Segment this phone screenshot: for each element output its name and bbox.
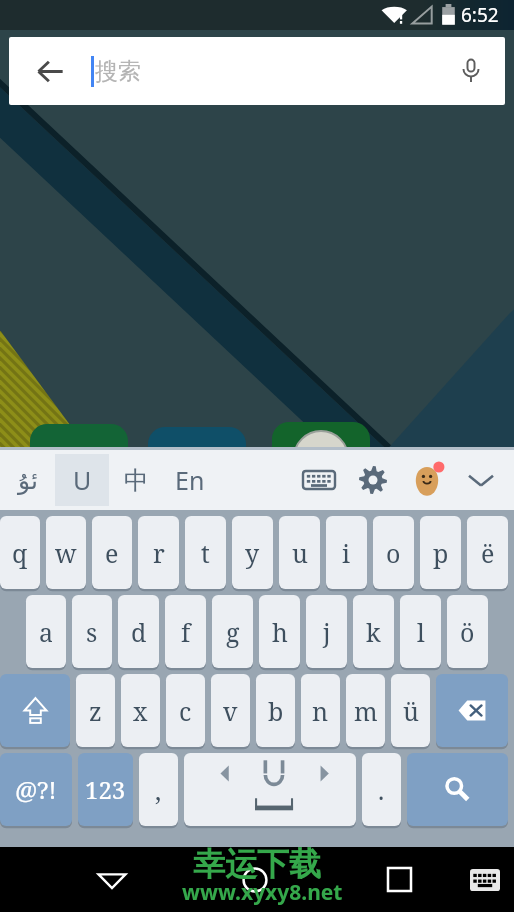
staticText: s xyxy=(86,615,98,649)
button[interactable]: Shift xyxy=(0,674,70,747)
button[interactable]: Backspace xyxy=(436,674,508,747)
staticText: u xyxy=(292,536,308,570)
staticText: ö xyxy=(460,615,475,649)
staticText: @?! xyxy=(15,773,57,806)
staticText: m xyxy=(354,694,378,728)
button[interactable]: t xyxy=(185,516,226,589)
staticText: n xyxy=(312,694,329,728)
button[interactable]: v xyxy=(211,674,250,747)
button[interactable]: Search xyxy=(407,753,508,826)
button[interactable]: Keyboard layout xyxy=(292,453,346,507)
button[interactable]: U xyxy=(55,454,109,506)
button[interactable]: , xyxy=(139,753,178,826)
staticText: f xyxy=(181,615,191,649)
button[interactable]: @?! xyxy=(0,753,72,826)
staticText: k xyxy=(366,615,381,649)
staticText: i xyxy=(342,536,351,570)
staticText: www.xyxy8.net xyxy=(182,878,343,907)
button[interactable]: Settings xyxy=(346,453,400,507)
button[interactable]: y xyxy=(232,516,273,589)
button[interactable]: a xyxy=(26,595,66,668)
button[interactable]: Back xyxy=(84,847,140,912)
staticText: ë xyxy=(481,536,495,570)
staticText: t xyxy=(201,536,210,570)
button[interactable]: . xyxy=(362,753,401,826)
staticText: 搜索 xyxy=(95,57,141,86)
button[interactable]: w xyxy=(46,516,86,589)
staticText: a xyxy=(39,615,54,649)
button[interactable]: ü xyxy=(391,674,430,747)
button[interactable]: Back xyxy=(9,37,505,105)
button[interactable]: x xyxy=(121,674,160,747)
staticText: e xyxy=(105,536,119,570)
button[interactable]: l xyxy=(400,595,441,668)
staticText: x xyxy=(133,694,148,728)
staticText: d xyxy=(131,615,147,649)
button[interactable]: z xyxy=(76,674,115,747)
staticText: v xyxy=(223,694,238,728)
button[interactable]: q xyxy=(0,516,40,589)
staticText: z xyxy=(89,694,102,728)
staticText: o xyxy=(386,536,401,570)
staticText: g xyxy=(226,615,240,649)
staticText: 幸运下载 xyxy=(193,844,321,884)
button[interactable]: k xyxy=(353,595,394,668)
staticText: ئۇ xyxy=(18,466,38,495)
button[interactable]: 123 xyxy=(78,753,133,826)
button[interactable]: e xyxy=(92,516,132,589)
staticText: y xyxy=(245,536,260,570)
staticText: q xyxy=(12,536,28,570)
staticText: c xyxy=(179,694,192,728)
button[interactable]: r xyxy=(138,516,179,589)
staticText: h xyxy=(272,615,288,649)
staticText: . xyxy=(378,773,385,807)
button[interactable]: g xyxy=(212,595,253,668)
staticText: l xyxy=(417,615,425,649)
staticText: r xyxy=(153,536,165,570)
button[interactable]: Switch keyboard xyxy=(457,847,513,912)
staticText: 123 xyxy=(85,773,126,806)
button[interactable]: s xyxy=(72,595,112,668)
button[interactable]: 中 xyxy=(109,454,163,506)
button[interactable]: p xyxy=(420,516,461,589)
button[interactable]: Voice search xyxy=(437,37,505,105)
button[interactable]: ë xyxy=(467,516,508,589)
staticText: 6:52 xyxy=(461,2,499,28)
staticText: En xyxy=(175,463,205,497)
staticText: ü xyxy=(403,694,419,728)
staticText: j xyxy=(323,615,331,649)
button[interactable]: Hide keyboard xyxy=(454,453,508,507)
staticText: 中 xyxy=(124,465,149,496)
button[interactable]: Back xyxy=(9,37,91,105)
staticText: b xyxy=(268,694,284,728)
button[interactable]: i xyxy=(326,516,367,589)
button[interactable]: En xyxy=(163,454,217,506)
button[interactable]: o xyxy=(373,516,414,589)
button[interactable]: c xyxy=(166,674,205,747)
button[interactable]: Home xyxy=(227,847,283,912)
staticText: p xyxy=(433,536,449,570)
button[interactable]: Space xyxy=(184,753,356,826)
staticText: , xyxy=(155,773,162,807)
button[interactable]: ö xyxy=(447,595,488,668)
staticText: w xyxy=(55,536,77,570)
button[interactable]: b xyxy=(256,674,295,747)
button[interactable]: h xyxy=(259,595,300,668)
button[interactable]: j xyxy=(306,595,347,668)
button[interactable]: ئۇ xyxy=(1,454,55,506)
staticText: U xyxy=(73,463,92,497)
button[interactable]: Recents xyxy=(371,847,427,912)
button[interactable]: d xyxy=(118,595,159,668)
button[interactable]: u xyxy=(279,516,320,589)
button[interactable]: Stickers xyxy=(400,453,454,507)
button[interactable]: n xyxy=(301,674,340,747)
button[interactable]: m xyxy=(346,674,385,747)
button[interactable]: f xyxy=(165,595,206,668)
